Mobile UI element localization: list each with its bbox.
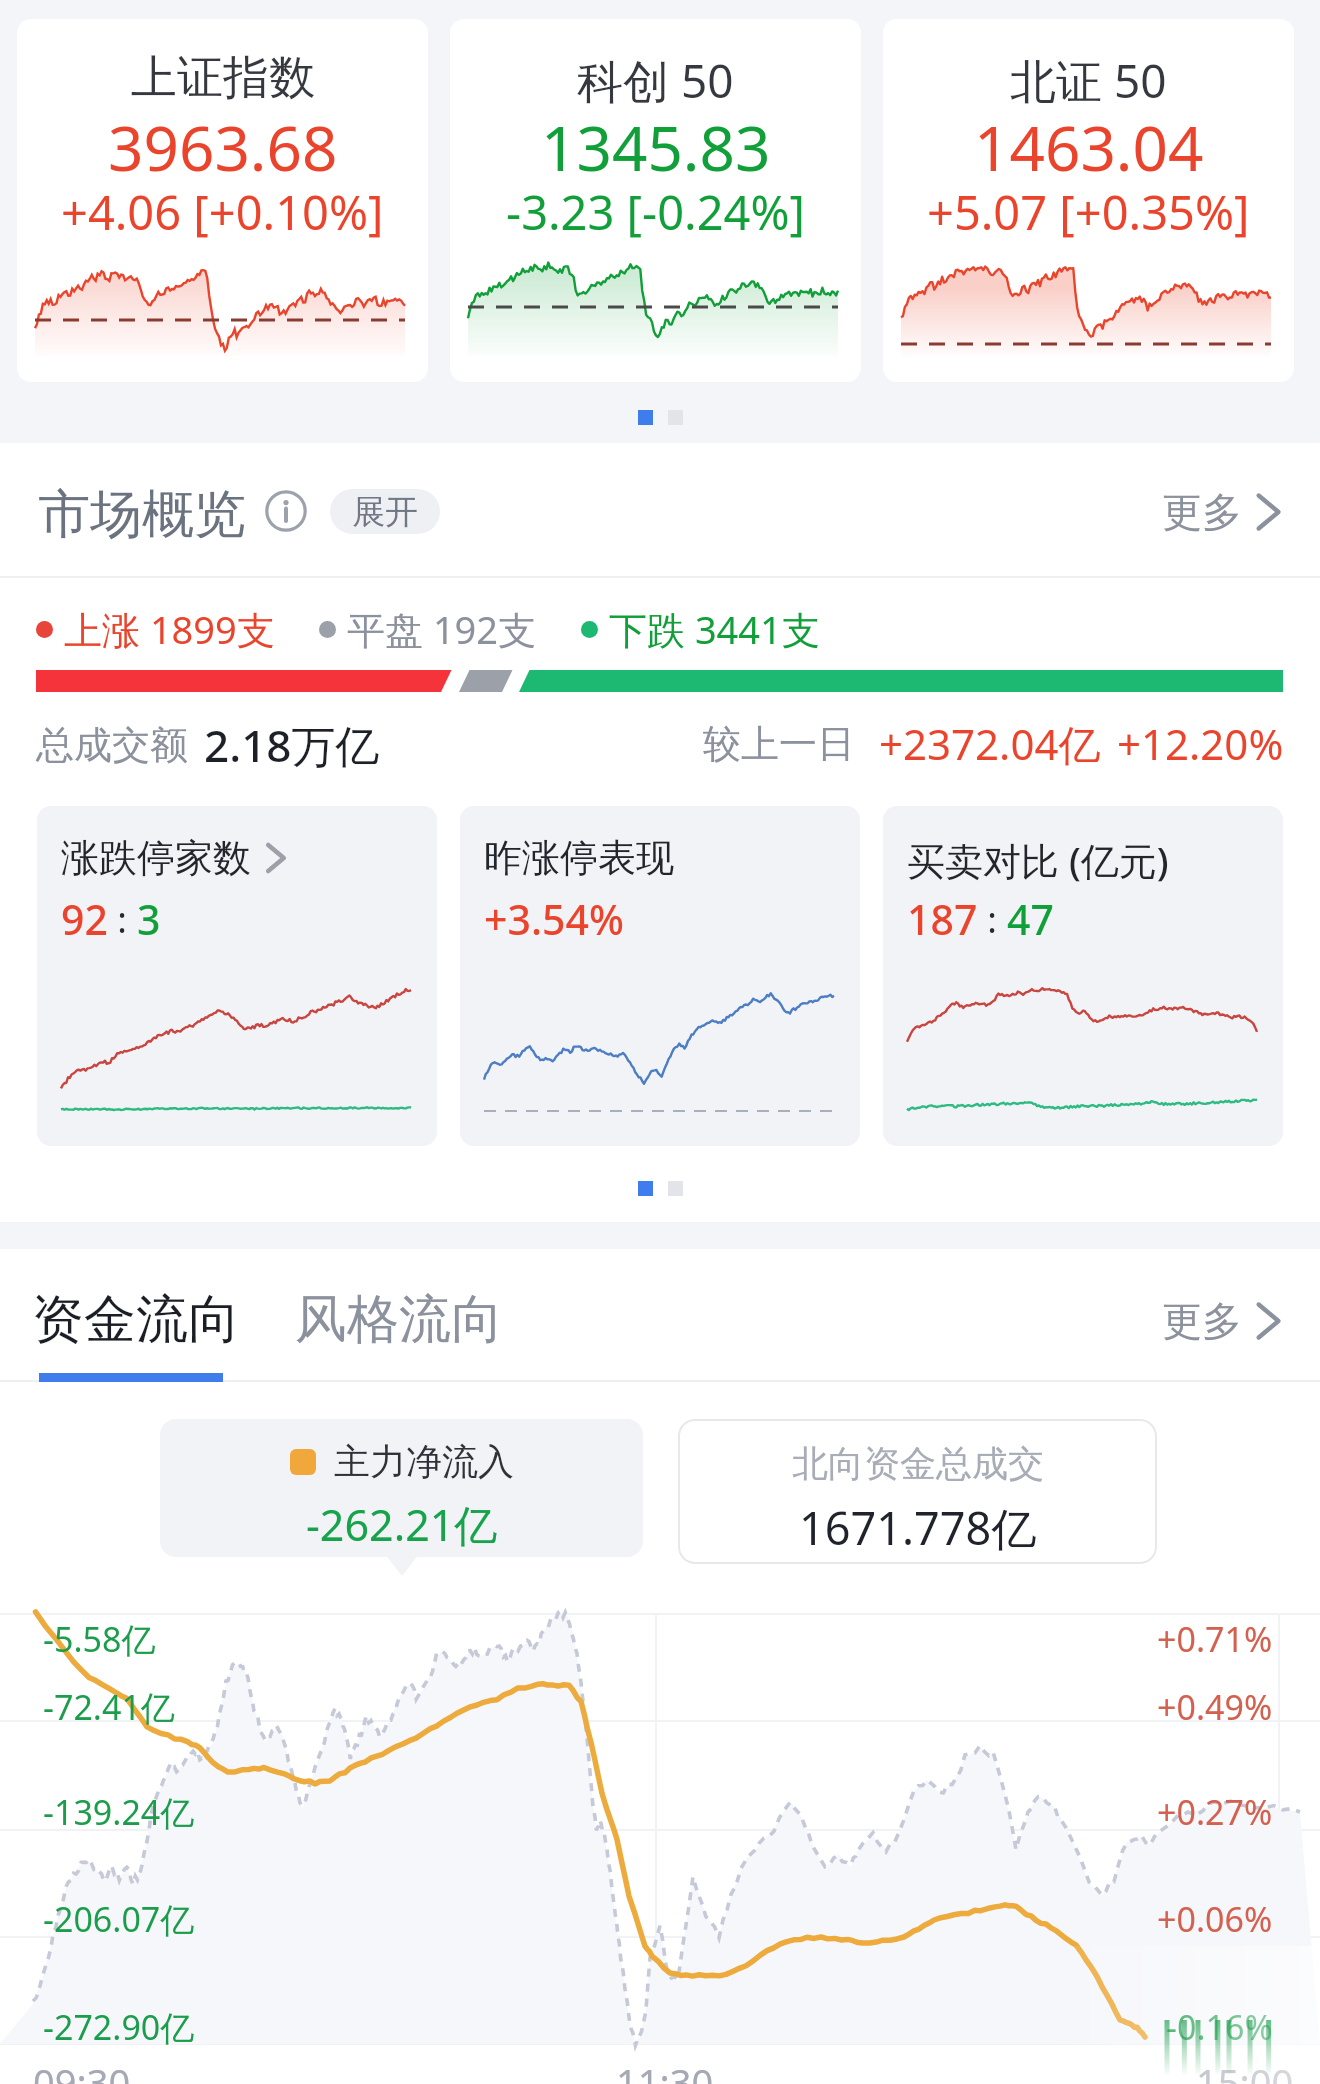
staticText: 涨跌停家数: [61, 834, 251, 882]
staticText: 风格流向: [295, 1287, 503, 1353]
staticText: -139.24亿: [43, 1789, 195, 1835]
staticText: -72.41亿: [43, 1684, 175, 1730]
staticText: 3: [137, 891, 161, 947]
staticText: +12.20%: [1117, 715, 1284, 772]
button[interactable]: 更多: [1162, 1296, 1288, 1346]
button[interactable]: 涨跌停家数: [37, 806, 437, 1146]
staticText: -3.23 [-0.24%]: [506, 180, 805, 244]
staticText: :: [978, 895, 1007, 944]
button[interactable]: 更多: [1162, 487, 1288, 537]
staticText: +3.54%: [484, 891, 624, 947]
staticText: 买卖对比 (亿元): [907, 834, 1169, 886]
button[interactable]: 资金流向: [20, 1275, 252, 1365]
staticText: 1463.04: [974, 105, 1204, 189]
staticText: -262.21亿: [306, 1495, 498, 1554]
staticText: 上涨 1899支: [64, 603, 275, 655]
staticText: 09:30: [33, 2056, 131, 2084]
button[interactable]: 风格流向: [283, 1275, 515, 1365]
staticText: 1671.778亿: [799, 1497, 1037, 1558]
staticText: -0.16%: [1166, 2004, 1273, 2050]
button[interactable]: 主力净流入: [160, 1419, 643, 1557]
staticText: 展开: [352, 491, 418, 533]
staticText: +0.49%: [1157, 1684, 1273, 1730]
button[interactable]: 买卖对比 (亿元): [883, 806, 1283, 1146]
staticText: 2.18万亿: [204, 715, 380, 775]
staticText: :: [108, 895, 137, 944]
button[interactable]: 展开: [330, 489, 440, 534]
staticText: 更多: [1162, 487, 1242, 537]
staticText: 北证 50: [1010, 49, 1167, 112]
staticText: 更多: [1162, 1296, 1242, 1346]
staticText: 昨涨停表现: [484, 834, 674, 882]
staticText: 下跌 3441支: [609, 603, 820, 655]
button[interactable]: 科创 50: [450, 19, 861, 382]
staticText: 15:00: [1196, 2056, 1294, 2084]
staticText: 上证指数: [131, 49, 315, 107]
staticText: 3963.68: [108, 105, 338, 189]
staticText: 资金流向: [32, 1287, 240, 1353]
staticText: -272.90亿: [43, 2004, 195, 2050]
staticText: 187: [907, 891, 978, 947]
button[interactable]: 昨涨停表现: [460, 806, 860, 1146]
staticText: 1345.83: [541, 105, 771, 189]
staticText: +0.27%: [1157, 1789, 1273, 1835]
staticText: 11:30: [616, 2056, 714, 2084]
button[interactable]: 北证 50: [883, 19, 1294, 382]
staticText: 平盘 192支: [347, 603, 537, 655]
staticText: 47: [1007, 891, 1054, 947]
staticText: 92: [61, 891, 108, 947]
staticText: -5.58亿: [43, 1616, 156, 1662]
staticText: 主力净流入: [334, 1439, 514, 1484]
button[interactable]: Info: [265, 490, 307, 532]
staticText: 北向资金总成交: [792, 1441, 1044, 1486]
staticText: 科创 50: [577, 49, 734, 112]
staticText: 总成交额: [36, 721, 188, 769]
staticText: +2372.04亿: [879, 715, 1101, 772]
button[interactable]: 上证指数: [17, 19, 428, 382]
staticText: +0.71%: [1157, 1616, 1273, 1662]
staticText: +0.06%: [1157, 1896, 1273, 1942]
staticText: +4.06 [+0.10%]: [61, 180, 384, 244]
button[interactable]: 北向资金总成交: [678, 1419, 1157, 1564]
button[interactable]: 市场概览: [26, 470, 258, 560]
staticText: +5.07 [+0.35%]: [927, 180, 1250, 244]
staticText: 市场概览: [38, 482, 246, 548]
staticText: 较上一日: [703, 720, 855, 768]
staticText: -206.07亿: [43, 1896, 195, 1942]
